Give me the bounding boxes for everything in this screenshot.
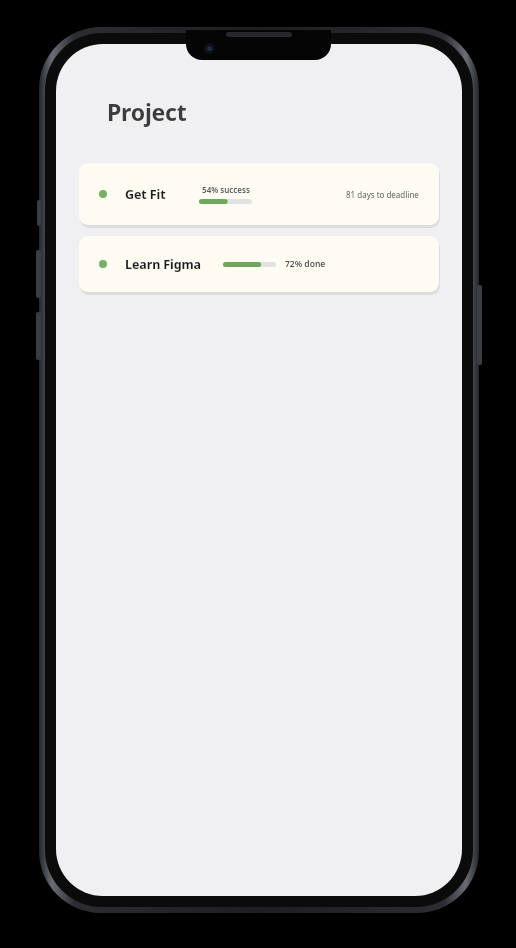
staticText: Learn Figma xyxy=(125,256,201,273)
button[interactable]: Get Fit xyxy=(79,163,439,225)
staticText: Project xyxy=(107,96,187,127)
button[interactable]: Learn Figma xyxy=(79,236,439,292)
staticText: 72% done xyxy=(285,258,326,270)
staticText: 81 days to deadline xyxy=(346,189,419,200)
staticText: 54% success xyxy=(202,184,250,195)
staticText: Get Fit xyxy=(125,186,166,203)
